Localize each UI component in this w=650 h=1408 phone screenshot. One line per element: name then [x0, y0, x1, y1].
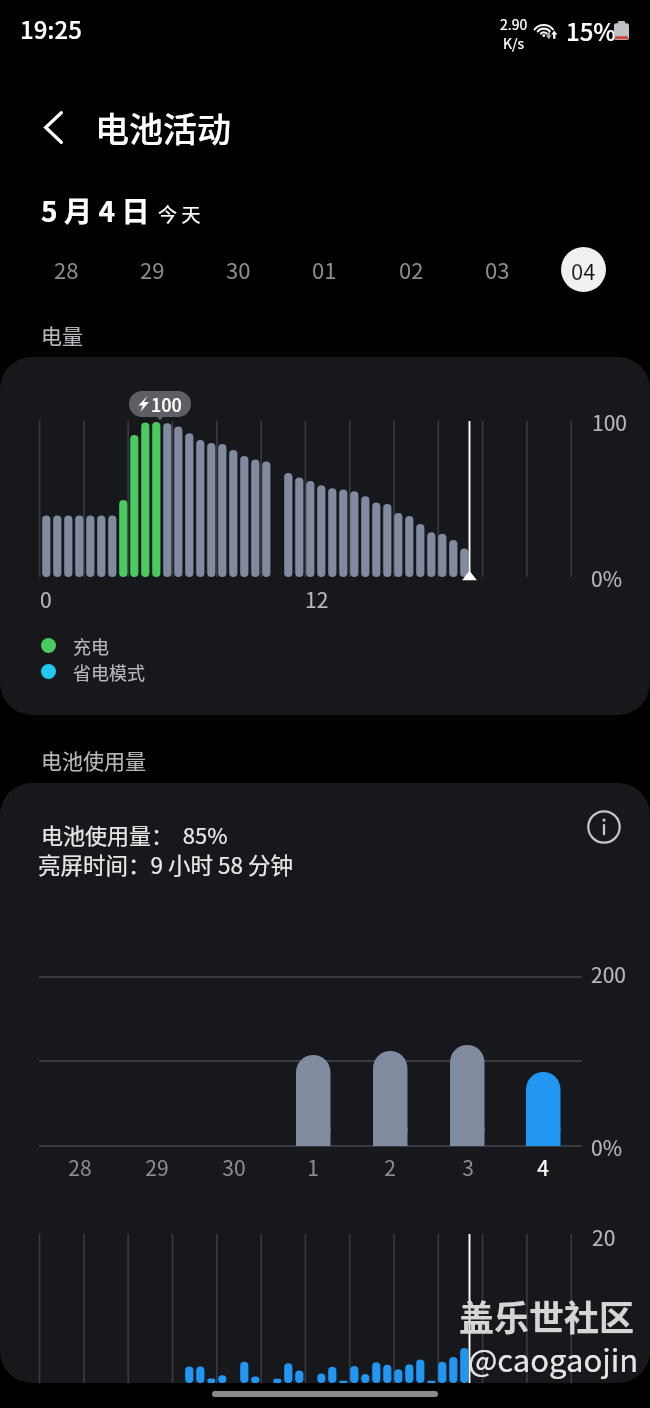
button[interactable]: Back [28, 102, 78, 152]
button[interactable]: 28 [37, 240, 95, 298]
staticText: 0 [40, 584, 52, 614]
staticText: 2.90 [500, 14, 528, 34]
staticText: 0% [591, 1132, 622, 1162]
staticText: 电池使用量 [41, 745, 146, 775]
button[interactable] [0, 357, 650, 715]
staticText: 电量 [41, 320, 83, 350]
staticText: 今天 [158, 200, 206, 228]
staticText: 充电 [73, 633, 109, 657]
staticText: 01 [312, 253, 337, 285]
staticText: 19:25 [20, 11, 82, 46]
staticText: 4 [537, 1152, 549, 1182]
staticText: K/s [503, 33, 525, 53]
staticText: 28 [54, 253, 79, 285]
button[interactable]: Information [580, 803, 627, 850]
staticText: 200 [591, 959, 626, 989]
staticText: 12 [305, 584, 329, 614]
staticText: 03 [485, 253, 510, 285]
staticText: 3 [462, 1152, 474, 1182]
staticText: 5月4日 [41, 190, 157, 231]
button[interactable]: 01 [295, 240, 353, 298]
staticText: 04 [571, 254, 596, 286]
staticText: 盖乐世社区 [459, 1290, 635, 1341]
button[interactable]: 02 [382, 240, 440, 298]
staticText: 省电模式 [73, 659, 145, 683]
staticText: 2 [384, 1152, 396, 1182]
staticText: 29 [145, 1152, 169, 1182]
staticText: 0% [591, 563, 622, 593]
staticText: 电池活动 [95, 103, 231, 152]
staticText: 30 [222, 1152, 246, 1182]
staticText: 1 [307, 1152, 319, 1182]
staticText: 20 [592, 1222, 616, 1252]
staticText: 28 [68, 1152, 92, 1182]
staticText: 29 [140, 253, 165, 285]
staticText: 亮屏时间：9 小时 58 分钟 [38, 848, 294, 881]
staticText: 电池使用量： 85% [41, 818, 228, 850]
button[interactable]: 30 [209, 240, 267, 298]
button[interactable]: 29 [123, 240, 181, 298]
button[interactable]: 04 [554, 240, 612, 298]
button[interactable]: 03 [468, 240, 526, 298]
staticText: 100 [151, 391, 182, 417]
staticText: 15% [566, 13, 616, 48]
staticText: 100 [592, 407, 627, 437]
staticText: @caogaojin [468, 1336, 639, 1381]
staticText: 02 [399, 253, 424, 285]
staticText: 30 [226, 253, 251, 285]
